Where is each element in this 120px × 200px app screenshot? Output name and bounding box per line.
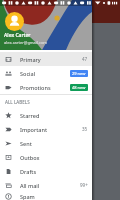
staticText: alex.carter@gmail.com: [4, 40, 48, 45]
button[interactable]: Starred: [0, 108, 92, 122]
button[interactable]: Important: [0, 122, 92, 136]
button[interactable]: Spam: [0, 192, 92, 200]
button[interactable]: Account: [5, 12, 24, 31]
button[interactable]: Social: [0, 66, 92, 80]
staticText: Drafts: [20, 168, 37, 175]
staticText: ALL LABELS: [5, 99, 30, 105]
button[interactable]: Outbox: [0, 150, 92, 164]
button[interactable]: Drafts: [0, 164, 92, 178]
button[interactable]: Sent: [0, 136, 92, 150]
staticText: 47: [82, 56, 88, 62]
staticText: Promotions: [20, 84, 51, 91]
staticText: Social: [20, 70, 36, 77]
staticText: Outbox: [20, 154, 40, 161]
staticText: Spam: [20, 193, 35, 200]
staticText: 29 new: [72, 71, 86, 76]
staticText: 35: [82, 126, 88, 132]
button[interactable]: Primary: [0, 52, 92, 66]
staticText: Important: [20, 126, 48, 133]
staticText: All mail: [20, 182, 40, 189]
button[interactable]: All mail: [0, 178, 92, 192]
button[interactable]: Promotions: [0, 80, 92, 94]
staticText: Starred: [20, 112, 40, 119]
staticText: 99+: [80, 182, 88, 188]
staticText: Alex Carter: [4, 32, 31, 39]
staticText: 48 new: [72, 85, 86, 90]
staticText: Primary: [20, 56, 41, 63]
staticText: Sent: [20, 140, 32, 147]
